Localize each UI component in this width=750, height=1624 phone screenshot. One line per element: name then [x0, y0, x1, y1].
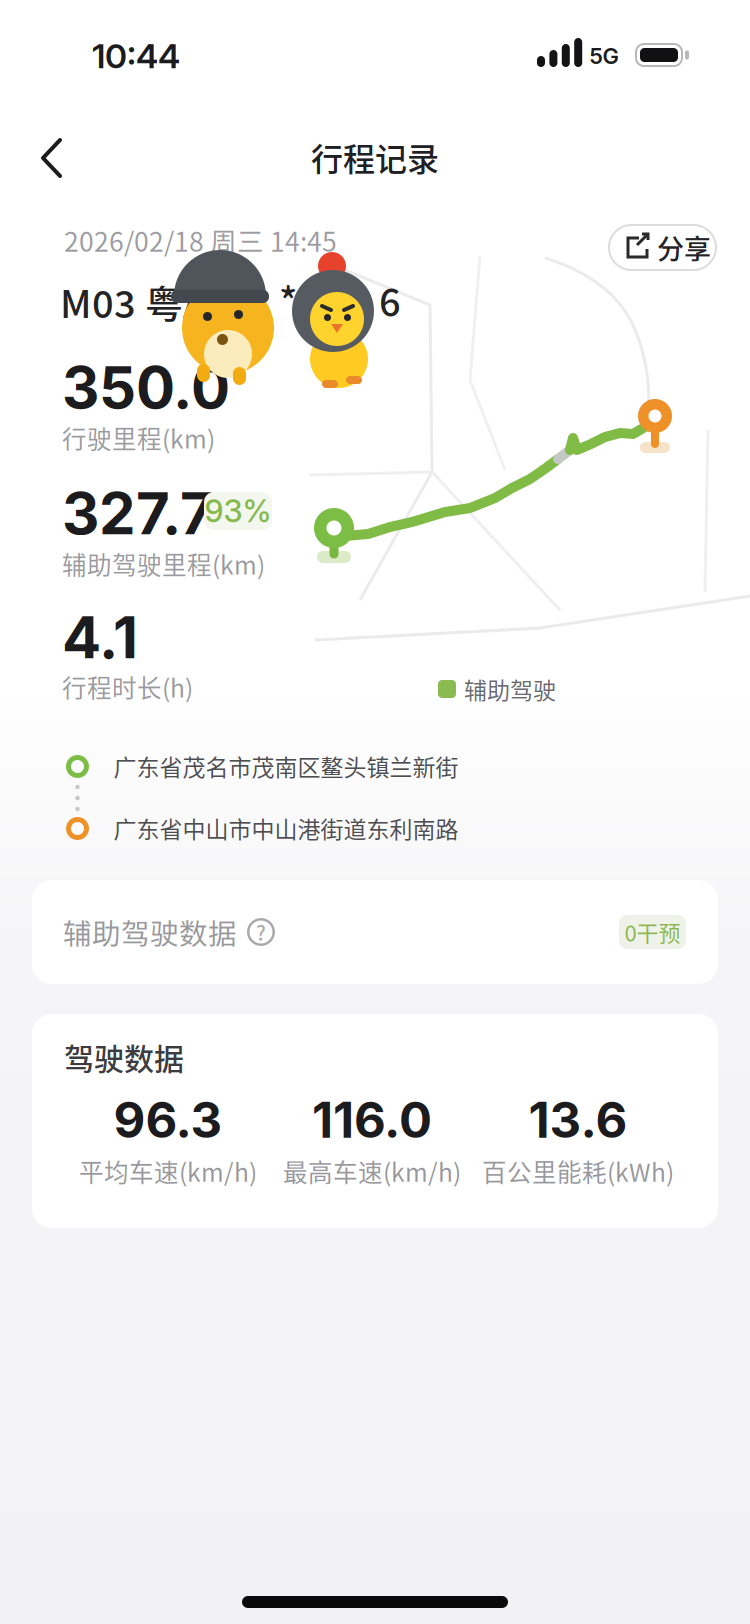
staticText: 行程时长(h)	[62, 669, 193, 704]
staticText: 辅助驾驶	[464, 672, 556, 706]
button[interactable]: 分享	[608, 224, 717, 271]
staticText: 4.1	[62, 602, 138, 672]
staticText: 广东省茂名市茂南区鳌头镇兰新街	[113, 749, 458, 783]
staticText: 116.0	[312, 1090, 432, 1150]
button[interactable]: 帮助	[247, 918, 275, 946]
staticText: 6	[379, 272, 401, 327]
staticText: 2026/02/18 周三 14:45	[64, 221, 337, 259]
staticText: 96.3	[113, 1090, 222, 1150]
staticText: 最高车速(km/h)	[283, 1153, 461, 1189]
staticText: 辅助驾驶里程(km)	[62, 546, 265, 581]
staticText: ?	[256, 917, 266, 946]
button[interactable]: Back	[30, 136, 90, 180]
staticText: 0干预	[624, 916, 680, 948]
staticText: 93%	[204, 492, 271, 530]
staticText: 行程记录	[311, 134, 439, 180]
staticText: M03 粤A	[60, 274, 207, 329]
staticText: 平均车速(km/h)	[79, 1153, 257, 1189]
staticText: 驾驶数据	[64, 1035, 184, 1079]
staticText: 327.7	[62, 478, 214, 548]
staticText: 350.0	[62, 352, 230, 422]
staticText: 广东省中山市中山港街道东利南路	[113, 811, 458, 845]
staticText: 13.6	[528, 1090, 627, 1150]
staticText: 分享	[657, 228, 711, 267]
staticText: 10:44	[92, 35, 180, 76]
staticText: *	[279, 271, 297, 326]
staticText: 5G	[589, 43, 618, 69]
staticText: 百公里能耗(kWh)	[482, 1153, 674, 1189]
staticText: 辅助驾驶数据	[63, 911, 237, 953]
staticText: 行驶里程(km)	[62, 420, 215, 455]
